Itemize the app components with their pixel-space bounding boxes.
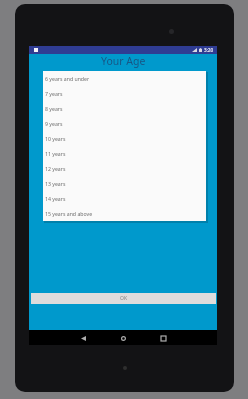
button[interactable]: OK — [31, 293, 216, 304]
button[interactable]: 8 years — [43, 101, 206, 116]
staticText: 6 years and under — [45, 75, 90, 82]
staticText: 15 years and above — [45, 210, 93, 217]
button[interactable]: 14 years — [43, 191, 206, 206]
staticText: 14 years — [45, 195, 66, 202]
button[interactable]: Back — [77, 332, 89, 344]
button[interactable]: 7 years — [43, 86, 206, 101]
staticText: 13 years — [45, 180, 66, 187]
button[interactable]: 12 years — [43, 161, 206, 176]
button[interactable]: Home — [117, 332, 129, 344]
button[interactable]: 9 years — [43, 116, 206, 131]
button[interactable]: 6 years and under — [43, 71, 206, 86]
button[interactable]: Recent apps — [157, 332, 169, 344]
button[interactable]: 13 years — [43, 176, 206, 191]
staticText: 9 years — [45, 120, 63, 127]
button[interactable]: 10 years — [43, 131, 206, 146]
staticText: OK — [120, 295, 128, 302]
staticText: 8 years — [45, 105, 63, 112]
button[interactable]: 15 years and above — [43, 206, 206, 221]
staticText: 10 years — [45, 135, 66, 142]
staticText: 3:20 — [204, 47, 214, 53]
staticText: 7 years — [45, 90, 63, 97]
staticText: 11 years — [45, 150, 66, 157]
staticText: Your Age — [101, 54, 146, 68]
button[interactable]: 11 years — [43, 146, 206, 161]
staticText: 12 years — [45, 165, 66, 172]
